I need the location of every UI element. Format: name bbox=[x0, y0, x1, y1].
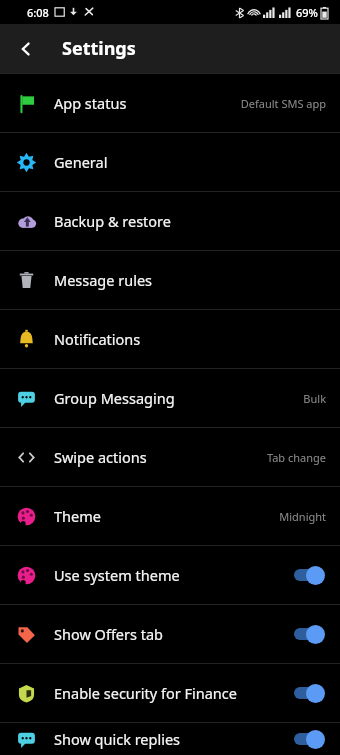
staticText: Show Offers tab bbox=[54, 624, 291, 644]
button[interactable]: Group Messaging bbox=[0, 369, 340, 427]
staticText: Enable security for Finance bbox=[54, 683, 291, 703]
staticText: Show quick replies bbox=[54, 729, 291, 749]
button[interactable]: Toggle on bbox=[291, 624, 325, 644]
staticText: 69% bbox=[296, 5, 318, 20]
staticText: Group Messaging bbox=[54, 388, 303, 408]
staticText: Settings bbox=[62, 36, 136, 61]
staticText: Backup & restore bbox=[54, 211, 340, 231]
staticText: Message rules bbox=[54, 270, 340, 290]
button[interactable]: Use system theme bbox=[0, 546, 340, 604]
staticText: Swipe actions bbox=[54, 447, 266, 467]
staticText: Default SMS app bbox=[240, 96, 326, 111]
button[interactable]: Show Offers tab bbox=[0, 605, 340, 663]
staticText: Use system theme bbox=[54, 565, 291, 585]
button[interactable]: Notifications bbox=[0, 310, 340, 368]
staticText: Theme bbox=[54, 506, 279, 526]
staticText: Bulk bbox=[303, 391, 326, 406]
button[interactable]: Swipe actions bbox=[0, 428, 340, 486]
button[interactable]: Show quick replies bbox=[0, 723, 340, 755]
staticText: Notifications bbox=[54, 329, 340, 349]
button[interactable]: Theme bbox=[0, 487, 340, 545]
staticText: Midnight bbox=[279, 509, 326, 524]
staticText: General bbox=[54, 152, 340, 172]
button[interactable]: Message rules bbox=[0, 251, 340, 309]
staticText: Tab change bbox=[266, 450, 326, 465]
staticText: App status bbox=[54, 93, 240, 113]
button[interactable]: Toggle on bbox=[291, 683, 325, 703]
button[interactable]: Toggle on bbox=[291, 565, 325, 585]
button[interactable]: Backup & restore bbox=[0, 192, 340, 250]
button[interactable]: General bbox=[0, 133, 340, 191]
button[interactable]: Enable security for Finance bbox=[0, 664, 340, 722]
button[interactable]: Toggle on bbox=[291, 729, 325, 749]
staticText: 6:08 bbox=[27, 5, 49, 20]
button[interactable]: Back bbox=[10, 33, 42, 65]
button[interactable]: App status bbox=[0, 74, 340, 132]
